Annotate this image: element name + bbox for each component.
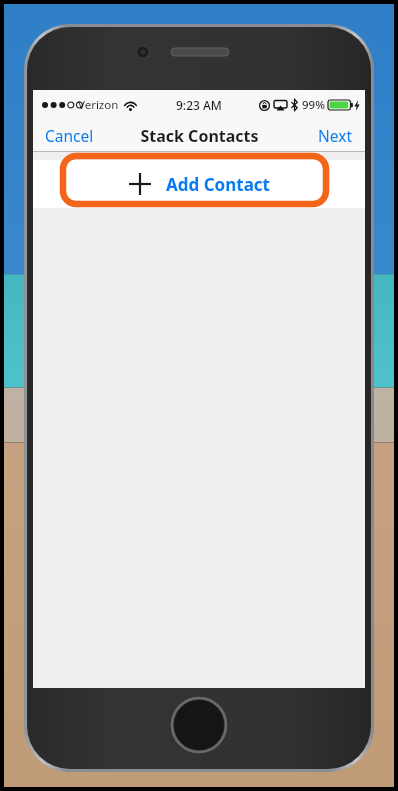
other: Highlight bbox=[33, 152, 365, 208]
button[interactable]: Add Contact bbox=[33, 160, 365, 208]
staticText: Cancel bbox=[45, 125, 94, 146]
staticText: 9:23 AM bbox=[176, 97, 222, 113]
staticText: Next bbox=[318, 125, 353, 146]
button[interactable]: Next bbox=[312, 121, 359, 150]
staticText: Add Contact bbox=[166, 173, 270, 196]
staticText: Verizon bbox=[78, 97, 119, 113]
button[interactable]: Cancel bbox=[39, 121, 100, 150]
staticText: Stack Contacts bbox=[140, 125, 259, 147]
staticText: 99% bbox=[302, 97, 325, 113]
